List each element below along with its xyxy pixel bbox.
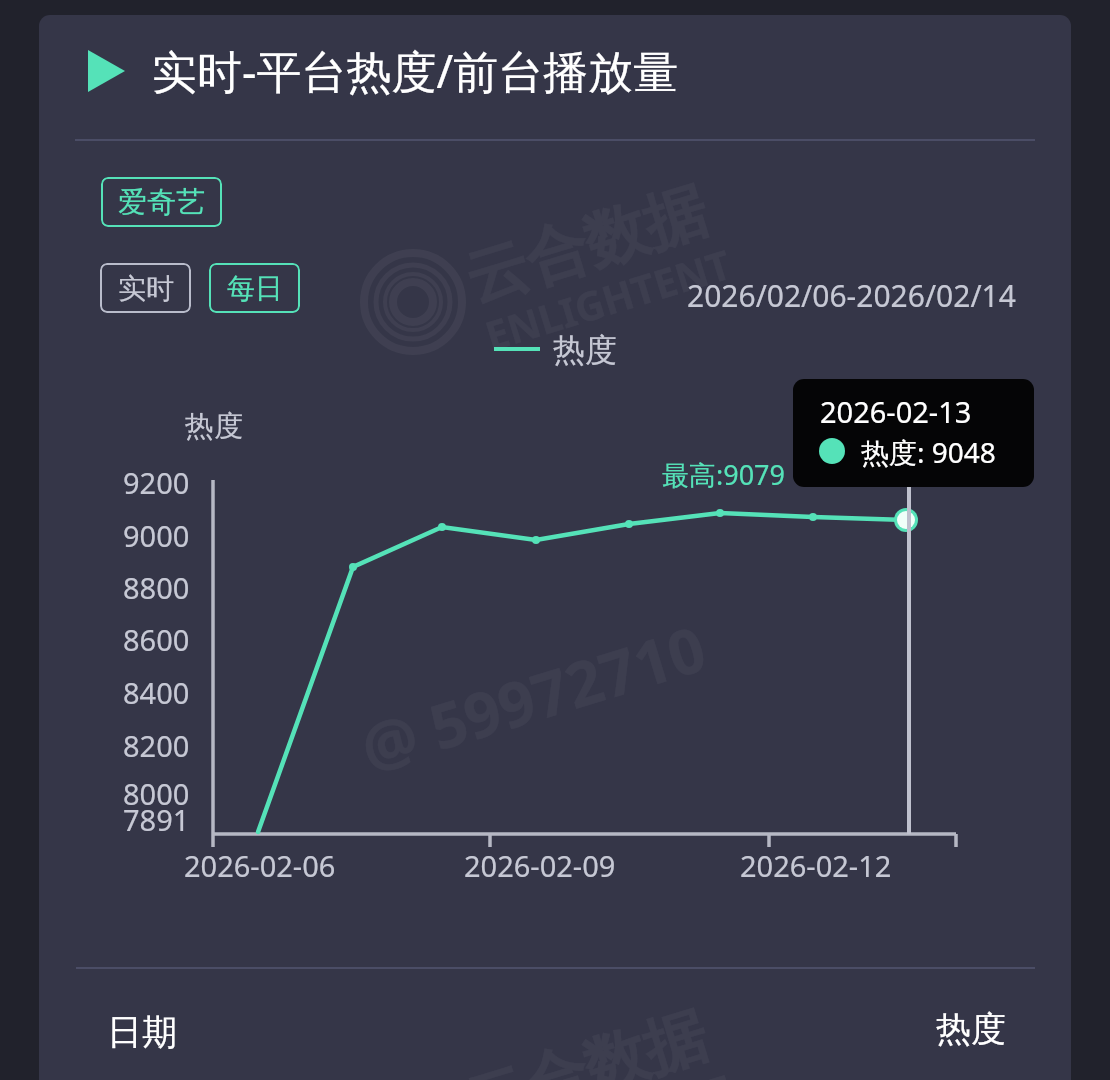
staticText: 2026-02-13 <box>820 392 972 431</box>
staticText: 8000 <box>123 774 190 813</box>
button[interactable]: 2026-02-13 <box>793 379 1034 487</box>
staticText: 实时 <box>118 271 174 306</box>
staticText: 热度 <box>553 330 617 370</box>
button[interactable]: 每日 <box>209 263 300 313</box>
staticText: 8800 <box>123 568 190 607</box>
other: Play <box>88 46 125 96</box>
staticText: 每日 <box>227 271 283 306</box>
staticText: 实时-平台热度/前台播放量 <box>152 40 679 101</box>
staticText: 2026-02-12 <box>740 846 892 885</box>
staticText: 8600 <box>123 620 190 659</box>
staticText: 日期 <box>107 1010 177 1054</box>
staticText: 9200 <box>123 463 190 502</box>
staticText: ENLIGHTENT <box>478 236 737 362</box>
staticText: 云合数据 <box>456 996 716 1080</box>
staticText: 8400 <box>123 673 190 712</box>
staticText: 8200 <box>123 726 190 765</box>
staticText: 云合数据 <box>456 171 716 318</box>
staticText: 2026-02-06 <box>184 846 336 885</box>
staticText: 爱奇艺 <box>118 184 205 221</box>
button[interactable]: 爱奇艺 <box>101 177 222 227</box>
staticText: ENLIGHTENT <box>478 1061 737 1080</box>
staticText: 7891 <box>123 800 190 839</box>
button[interactable]: 实时 <box>100 263 191 313</box>
staticText: 热度 <box>185 408 243 445</box>
staticText: 2026-02-09 <box>464 846 616 885</box>
staticText: 热度 <box>936 1007 1006 1051</box>
staticText: 9000 <box>123 516 190 555</box>
staticText: 2026/02/06-2026/02/14 <box>687 275 1016 316</box>
staticText: 热度: 9048 <box>861 433 996 471</box>
button[interactable]: Play <box>88 40 679 101</box>
staticText: 最高:9079 <box>662 456 786 493</box>
